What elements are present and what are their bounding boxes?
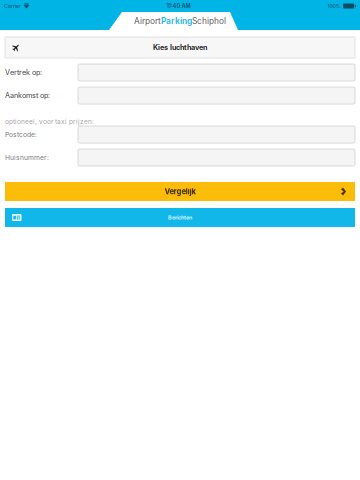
staticText: Berichten	[168, 214, 192, 221]
staticText: Vergelijk	[164, 187, 195, 196]
staticText: 100%	[328, 3, 341, 9]
staticText: Aankomst op:	[5, 91, 50, 100]
staticText: Postcode:	[5, 130, 37, 139]
staticText: Airport	[134, 16, 161, 26]
button[interactable]: Vergelijk	[5, 182, 355, 201]
staticText: Huisnummer:	[5, 153, 49, 162]
staticText: optioneel, voor taxi prijzen:	[5, 117, 94, 125]
staticText: 11:40 AM	[167, 3, 191, 9]
staticText: Kies luchthaven	[153, 43, 207, 52]
staticText: Vertrek op:	[5, 68, 42, 77]
button[interactable]: Berichten	[5, 208, 355, 227]
staticText: Parking	[161, 16, 192, 26]
staticText: Carrier	[4, 3, 21, 9]
staticText: Schiphol	[192, 16, 226, 26]
button[interactable]: Kies luchthaven	[5, 37, 355, 58]
